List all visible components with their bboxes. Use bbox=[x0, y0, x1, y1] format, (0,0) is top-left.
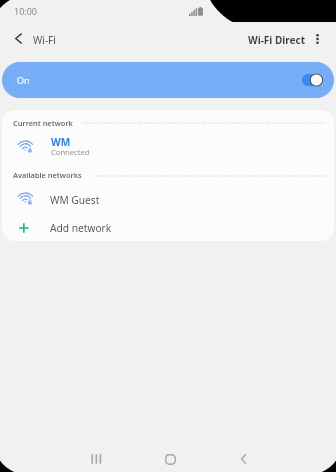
staticText: Connected bbox=[51, 147, 90, 157]
staticText: 10:00 bbox=[14, 5, 38, 17]
staticText: Current network bbox=[13, 118, 73, 128]
button[interactable]: WM Guest bbox=[2, 186, 334, 212]
staticText: On bbox=[17, 74, 30, 86]
button[interactable]: Navigate up bbox=[4, 24, 33, 53]
staticText: WM Guest bbox=[50, 193, 100, 207]
staticText: Wi-Fi Direct bbox=[248, 33, 305, 47]
button[interactable]: WM bbox=[2, 133, 334, 163]
button[interactable]: More options bbox=[305, 26, 330, 52]
button[interactable]: Add network bbox=[2, 214, 334, 240]
button[interactable]: Home bbox=[154, 443, 186, 472]
staticText: Add network bbox=[50, 221, 112, 235]
staticText: WM bbox=[51, 135, 71, 149]
button[interactable]: Recents bbox=[80, 443, 112, 472]
button[interactable]: Back bbox=[227, 443, 259, 472]
button[interactable]: On bbox=[2, 62, 334, 98]
staticText: Available networks bbox=[13, 170, 82, 180]
staticText: Wi-Fi bbox=[33, 33, 56, 47]
button[interactable]: Wi-Fi Direct bbox=[242, 28, 311, 52]
